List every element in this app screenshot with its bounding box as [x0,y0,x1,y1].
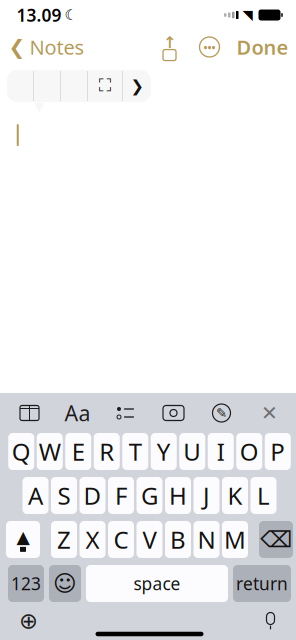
button[interactable]: Markup [204,398,238,428]
button[interactable]: space [86,565,228,602]
staticText: 123 [11,572,41,595]
staticText: B [170,524,186,555]
button[interactable]: Y [151,433,177,470]
staticText: Y [157,436,171,467]
button[interactable]: L [250,477,276,514]
button[interactable]: Shift [6,521,40,558]
button[interactable]: Z [51,521,77,558]
button[interactable]: P [265,433,291,470]
staticText: V [142,524,156,555]
button[interactable]: C [108,521,134,558]
staticText: ••• [203,40,215,54]
button[interactable]: Format [60,398,94,428]
staticText: ☺ [53,571,77,596]
button[interactable]: A [22,477,48,514]
staticText: space [133,572,180,595]
staticText: U [183,436,201,467]
button[interactable]: H [165,477,191,514]
staticText: Done [236,34,288,60]
staticText: ▲ [16,527,29,547]
button[interactable]: Delete [259,521,293,558]
button[interactable]: Q [8,433,34,470]
button[interactable]: Close Keyboard [252,398,286,428]
button[interactable]: R [94,433,120,470]
button[interactable]: Numbers [8,565,44,602]
button[interactable]: Next Keyboard [0,604,46,638]
button[interactable]: Share [156,34,182,60]
staticText: ⌫ [260,527,292,552]
staticText: ↑ [163,33,176,52]
staticText: K [227,480,242,511]
staticText: J [203,480,210,511]
button[interactable]: More [182,34,222,60]
button[interactable]: V [136,521,162,558]
staticText: Q [12,436,31,467]
button[interactable]: S [51,477,77,514]
button[interactable]: return [233,565,291,602]
staticText: I [217,436,225,467]
staticText: T [129,436,142,467]
button[interactable]: G [136,477,162,514]
button[interactable]: More Actions [123,70,151,102]
staticText: ⛶ [99,77,111,94]
button[interactable]: T [122,433,148,470]
staticText: Aa [64,399,90,427]
button[interactable]: Camera [156,398,190,428]
staticText: Notes [29,34,84,60]
button[interactable]: O [236,433,262,470]
button[interactable]: B [165,521,191,558]
button[interactable]: D [79,477,105,514]
staticText: N [197,524,215,555]
staticText: R [99,436,114,467]
staticText: Z [57,524,71,555]
staticText: ❮ [8,36,25,58]
staticText: S [57,480,70,511]
button[interactable]: Done [222,28,296,66]
staticText: L [257,480,270,511]
staticText: ✎ [216,405,227,420]
staticText: W [39,436,61,467]
button[interactable]: E [65,433,91,470]
button[interactable]: ❮ [0,28,84,66]
staticText: 13.09 [16,3,61,26]
staticText: F [115,480,127,511]
staticText: ⊕ [19,608,38,634]
button[interactable]: F [108,477,134,514]
staticText: D [83,480,101,511]
button[interactable]: K [222,477,248,514]
staticText: H [169,480,187,511]
staticText: ▼ [34,99,44,114]
staticText: O [240,436,259,467]
staticText: ❯ [130,77,143,95]
button[interactable]: Table [12,398,46,428]
staticText: return [236,572,288,595]
staticText: E [72,436,85,467]
button[interactable]: J [193,477,219,514]
staticText: M [224,524,246,555]
button[interactable]: Dictate [252,604,296,638]
button[interactable]: Emoji [49,565,81,602]
staticText: C [113,524,128,555]
staticText: A [28,480,43,511]
button[interactable]: Scan Text [88,70,122,102]
button[interactable]: N [193,521,219,558]
staticText: P [270,436,285,467]
staticText: ☾ [64,7,77,23]
button[interactable]: W [37,433,63,470]
button[interactable]: Checklist [108,398,142,428]
button[interactable]: X [79,521,105,558]
button[interactable]: I [208,433,234,470]
staticText: ✕ [261,402,278,424]
button[interactable]: U [179,433,205,470]
staticText: ◥ [242,7,252,22]
staticText: G [141,480,158,511]
staticText: X [85,524,99,555]
button[interactable]: M [222,521,248,558]
